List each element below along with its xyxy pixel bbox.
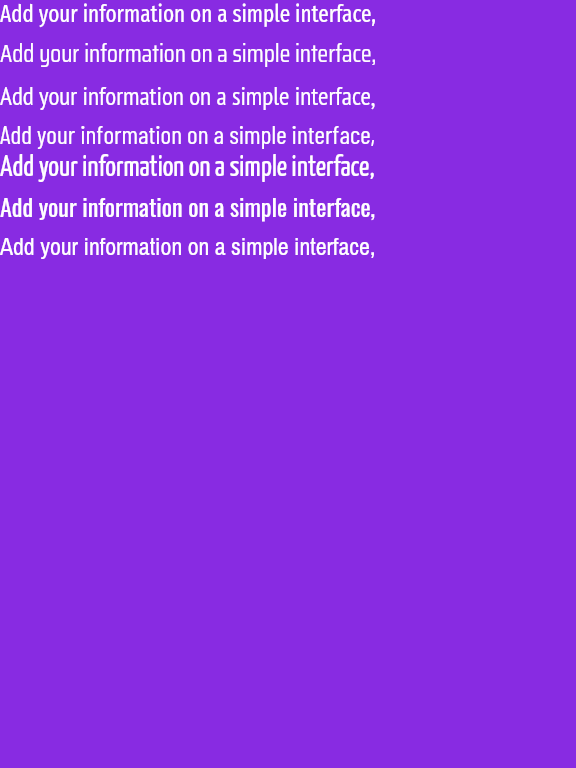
staticText: Add your information on a simple interfa…	[0, 188, 376, 224]
staticText: Add your information on a simple interfa…	[0, 118, 375, 149]
staticText: Add your information on a simple interfa…	[0, 34, 377, 73]
staticText: Add your information on a simple interfa…	[0, 79, 376, 112]
staticText: Add your information on a simple interfa…	[0, 230, 376, 262]
staticText: Add your information on a simple interfa…	[0, 155, 375, 182]
staticText: Add your information on a simple interfa…	[0, 0, 376, 28]
